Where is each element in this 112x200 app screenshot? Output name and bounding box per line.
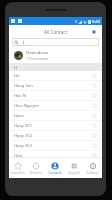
button[interactable]: Favorites [9, 158, 27, 178]
button[interactable]: Hao N [9, 91, 102, 100]
button[interactable]: Hpay 001 [9, 121, 102, 130]
button[interactable]: Recents [27, 158, 45, 178]
staticText: Hoa [14, 153, 22, 159]
staticText: All Contact [44, 29, 68, 35]
button[interactable]: Hang Son [9, 81, 102, 90]
staticText: Ho [14, 73, 20, 79]
staticText: 1 Description [26, 56, 49, 61]
button[interactable]: Contacts [45, 158, 64, 178]
staticText: H [14, 65, 17, 70]
staticText: Keypad [68, 171, 80, 175]
button[interactable]: Hpev [9, 111, 102, 120]
staticText: Hpay 001 [14, 123, 33, 129]
button[interactable]: Hpay 002 [9, 131, 102, 140]
button[interactable]: Settings [83, 158, 102, 178]
staticText: Doan Anna [26, 50, 48, 56]
staticText: Settings [86, 171, 99, 175]
staticText: Hpev [14, 113, 24, 119]
button[interactable]: Hoa [9, 151, 102, 160]
staticText: Favorites [11, 171, 25, 175]
button[interactable]: Doan Anna [9, 47, 102, 63]
staticText: Hpay 002 [14, 133, 33, 139]
staticText: Recents [30, 171, 42, 175]
staticText: Hao N [14, 93, 26, 99]
staticText: Hang Son [14, 83, 33, 89]
button[interactable]: Keypad [64, 158, 83, 178]
staticText: 9:40 [92, 19, 100, 24]
button[interactable]: Hien Nguyen [9, 101, 102, 110]
staticText: Hien Nguyen [14, 103, 40, 109]
staticText: Contacts [48, 171, 62, 175]
button[interactable]: Hpay 003 [9, 141, 102, 150]
button[interactable] [12, 38, 99, 46]
button[interactable]: Ho [9, 71, 102, 80]
staticText: Hpay 003 [14, 143, 33, 149]
button[interactable]: Add contact [90, 28, 97, 35]
